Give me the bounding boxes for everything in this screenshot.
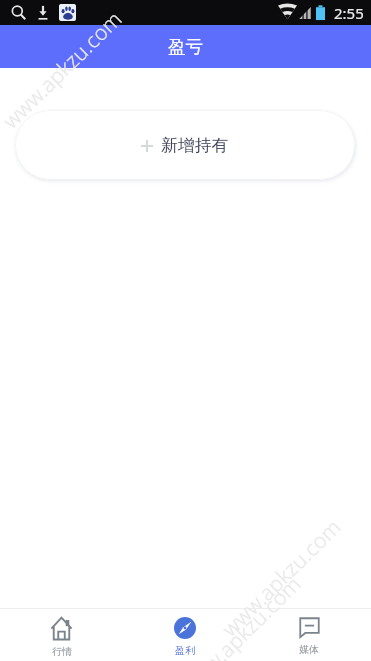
staticText: 新增持有 — [161, 135, 229, 156]
button[interactable]: 新增持有 — [15, 110, 355, 180]
button[interactable]: 盈利 — [123, 609, 247, 660]
staticText: 盈亏 — [168, 36, 203, 58]
staticText: 2:55 — [334, 3, 364, 23]
staticText: 盈利 — [175, 644, 195, 657]
button[interactable]: Download — [36, 5, 50, 20]
button[interactable]: Search — [11, 5, 26, 20]
button[interactable]: 媒体 — [247, 609, 371, 660]
button[interactable]: Baidu app — [59, 4, 76, 21]
staticText: 媒体 — [299, 643, 319, 656]
staticText: 行情 — [52, 645, 72, 658]
button[interactable]: 行情 — [0, 609, 123, 660]
